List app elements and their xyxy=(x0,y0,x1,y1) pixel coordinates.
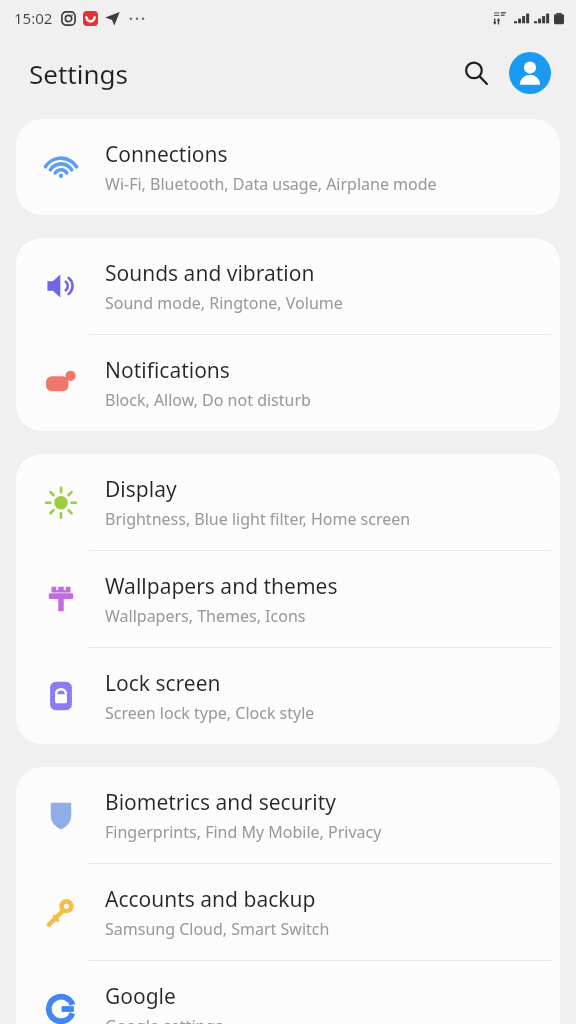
staticText: Screen lock type, Clock style xyxy=(105,702,315,724)
staticText: Samsung Cloud, Smart Switch xyxy=(105,918,330,940)
staticText: Wallpapers, Themes, Icons xyxy=(105,605,306,627)
staticText: Wallpapers and themes xyxy=(105,572,338,601)
staticText: Lock screen xyxy=(105,669,221,698)
staticText: Sounds and vibration xyxy=(105,259,315,288)
button[interactable]: Notifications xyxy=(16,335,560,431)
staticText: Connections xyxy=(105,140,228,169)
staticText: Block, Allow, Do not disturb xyxy=(105,389,311,411)
button[interactable]: Search xyxy=(453,50,499,96)
staticText: Fingerprints, Find My Mobile, Privacy xyxy=(105,821,382,843)
staticText: Google settings xyxy=(105,1015,223,1024)
staticText: Accounts and backup xyxy=(105,885,316,914)
staticText: Google xyxy=(105,982,176,1011)
button[interactable]: Connections xyxy=(16,119,560,215)
button[interactable]: Accounts and backup xyxy=(16,864,560,960)
staticText: Brightness, Blue light filter, Home scre… xyxy=(105,508,411,530)
button[interactable]: Sounds and vibration xyxy=(16,238,560,334)
button[interactable]: Google xyxy=(16,961,560,1024)
button[interactable]: Wallpapers and themes xyxy=(16,551,560,647)
staticText: Biometrics and security xyxy=(105,788,336,817)
button[interactable]: Display xyxy=(16,454,560,550)
staticText: Wi-Fi, Bluetooth, Data usage, Airplane m… xyxy=(105,173,437,195)
staticText: Display xyxy=(105,475,177,504)
button[interactable]: Account xyxy=(508,51,552,95)
staticText: Settings xyxy=(29,56,128,91)
staticText: Sound mode, Ringtone, Volume xyxy=(105,292,343,314)
staticText: Notifications xyxy=(105,356,230,385)
button[interactable]: Biometrics and security xyxy=(16,767,560,863)
staticText: 15:02 xyxy=(14,8,53,28)
button[interactable]: Lock screen xyxy=(16,648,560,744)
